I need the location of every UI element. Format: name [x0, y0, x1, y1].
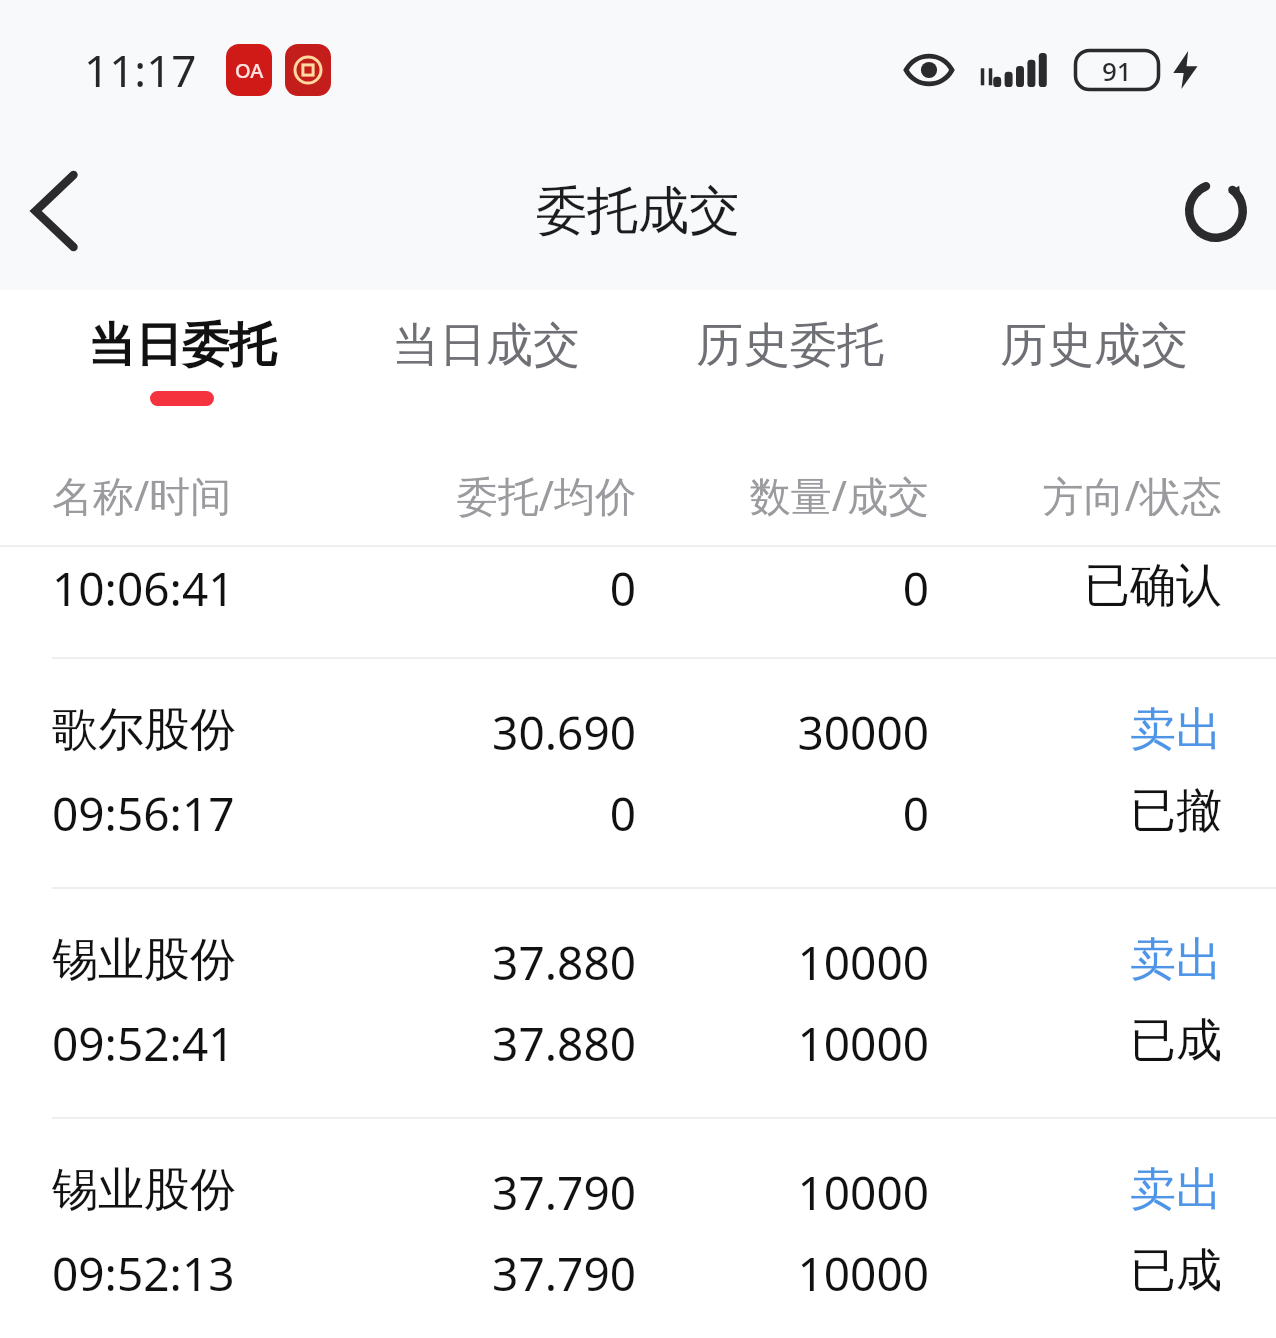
button[interactable]: Back — [0, 151, 110, 271]
staticText: 锡业股份 — [52, 1161, 344, 1219]
staticText: 0 — [344, 782, 636, 845]
staticText: 锡业股份 — [52, 931, 344, 989]
button[interactable]: 10:06:41 — [0, 547, 1276, 657]
staticText: 37.880 — [344, 1012, 636, 1075]
staticText: 10000 — [636, 1161, 929, 1224]
staticText: 37.790 — [344, 1161, 636, 1224]
button[interactable]: 历史委托 — [638, 290, 942, 445]
staticText: 委托成交 — [536, 179, 740, 243]
staticText: 37.790 — [344, 1242, 636, 1305]
button[interactable]: 锡业股份 — [0, 1119, 1276, 1338]
staticText: 方向/状态 — [929, 467, 1222, 523]
staticText: 10000 — [636, 1242, 929, 1305]
staticText: 当日委托 — [88, 316, 276, 375]
staticText: 09:52:13 — [52, 1242, 344, 1305]
staticText: 0 — [344, 557, 636, 620]
button[interactable]: 历史成交 — [942, 290, 1246, 445]
staticText: 卖出 — [929, 1161, 1222, 1219]
staticText: 历史委托 — [696, 316, 884, 375]
staticText: 历史成交 — [1000, 316, 1188, 375]
staticText: OA — [235, 57, 264, 84]
staticText: 30000 — [636, 701, 929, 764]
button[interactable]: 当日成交 — [334, 290, 638, 445]
staticText: 0 — [636, 557, 929, 620]
staticText: 歌尔股份 — [52, 701, 344, 759]
staticText: 0 — [636, 782, 929, 845]
staticText: 10000 — [636, 931, 929, 994]
staticText: 10000 — [636, 1012, 929, 1075]
staticText: 已成 — [929, 1012, 1222, 1070]
staticText: 委托/均价 — [344, 467, 636, 523]
button[interactable]: Refresh — [1156, 151, 1276, 271]
staticText: 已确认 — [929, 557, 1222, 615]
button[interactable]: 当日委托 — [30, 290, 334, 445]
staticText: 卖出 — [929, 701, 1222, 759]
staticText: 已撤 — [929, 782, 1222, 840]
staticText: 30.690 — [344, 701, 636, 764]
button[interactable]: 歌尔股份 — [0, 659, 1276, 887]
staticText: 09:56:17 — [52, 782, 344, 845]
staticText: 11:17 — [84, 40, 197, 100]
staticText: 09:52:41 — [52, 1012, 344, 1075]
staticText: 10:06:41 — [52, 557, 344, 620]
staticText: 卖出 — [929, 931, 1222, 989]
staticText: 91 — [1102, 53, 1132, 88]
button[interactable]: 锡业股份 — [0, 889, 1276, 1117]
staticText: 已成 — [929, 1242, 1222, 1300]
staticText: 名称/时间 — [52, 467, 344, 523]
staticText: 数量/成交 — [636, 467, 929, 523]
staticText: 37.880 — [344, 931, 636, 994]
staticText: 当日成交 — [392, 316, 580, 375]
